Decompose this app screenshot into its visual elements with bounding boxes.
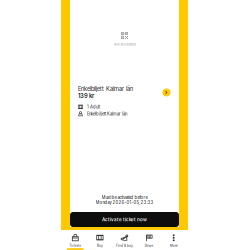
- staticText: Must be activated before: [101, 195, 147, 200]
- staticText: Tickets: [69, 243, 81, 247]
- staticText: 139 kr: [78, 92, 94, 99]
- button[interactable]: More: [161, 230, 186, 250]
- staticText: Enkelbiljett Kalmar län: [78, 85, 133, 92]
- staticText: Not activated: [113, 42, 135, 46]
- staticText: Enkelbiljett Kalmar län: [87, 111, 127, 116]
- staticText: 1 Adult: [87, 104, 100, 109]
- button[interactable]: Buy: [88, 230, 112, 250]
- button[interactable]: Tickets: [63, 230, 88, 250]
- staticText: More: [170, 243, 178, 247]
- button[interactable]: Find & buy: [112, 230, 137, 250]
- button[interactable]: Show ticket details: [162, 88, 171, 97]
- staticText: Find & buy: [116, 243, 133, 247]
- staticText: Buy: [97, 243, 103, 247]
- button[interactable]: Stops: [137, 230, 161, 250]
- staticText: Stops: [145, 243, 154, 247]
- button[interactable]: Activate ticket now: [70, 212, 179, 227]
- staticText: Monday 2026-01-05, 23:33: [95, 200, 153, 205]
- staticText: Activate ticket now: [102, 217, 147, 222]
